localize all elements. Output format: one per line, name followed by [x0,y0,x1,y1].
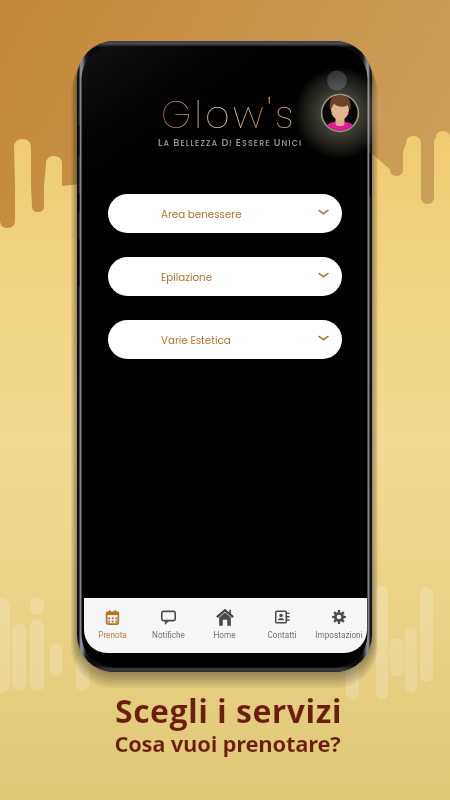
staticText: Epilazione [161,270,213,284]
button[interactable]: Prenota [84,598,140,653]
staticText: Area benessere [161,207,242,221]
staticText: Scegli i servizi [115,689,342,733]
button[interactable]: Notifiche [140,598,196,653]
staticText: Notifiche [152,630,185,640]
staticText: Glow's [161,88,297,141]
staticText: Varie Estetica [161,333,231,347]
staticText: LA BELLEZZA DI ESSERE UNICI [158,136,303,149]
button[interactable]: Epilazione [108,257,342,296]
button[interactable]: Contatti [253,598,310,653]
button[interactable]: Varie Estetica [108,320,342,359]
staticText: Home [213,630,236,640]
staticText: Contatti [267,630,297,640]
button[interactable]: Area benessere [108,194,342,233]
staticText: Cosa vuoi prenotare? [114,728,341,758]
staticText: Prenota [98,630,127,640]
staticText: Impostazioni [315,630,363,640]
button[interactable]: Impostazioni [310,598,367,653]
button[interactable]: Home [196,598,253,653]
